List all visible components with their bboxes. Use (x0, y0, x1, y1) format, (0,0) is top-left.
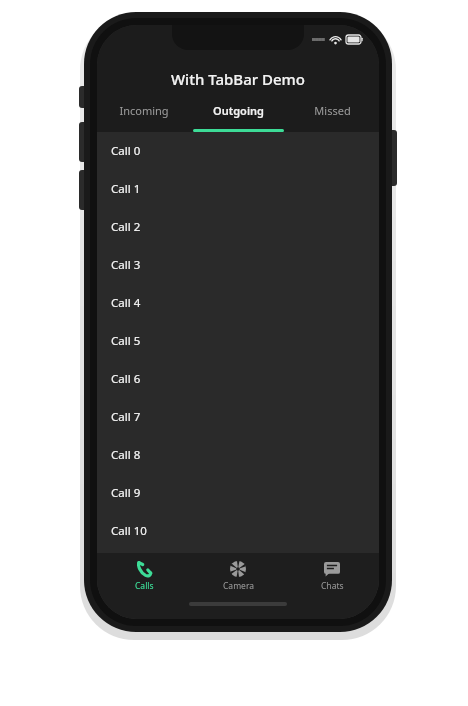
staticText: Chats (321, 580, 344, 592)
staticText: Outgoing (213, 103, 264, 118)
button[interactable]: Camera (191, 553, 285, 599)
button[interactable]: Incoming (97, 96, 191, 132)
staticText: Call 6 (111, 371, 141, 387)
staticText: Call 8 (111, 447, 141, 463)
button[interactable]: Call 10 (97, 512, 379, 550)
button[interactable]: Call 0 (97, 132, 379, 170)
button[interactable]: Call 11 (97, 550, 379, 588)
staticText: With TabBar Demo (171, 69, 305, 89)
button[interactable]: Call 3 (97, 246, 379, 284)
staticText: Call 10 (111, 523, 147, 539)
button[interactable]: Call 7 (97, 398, 379, 436)
staticText: Call 4 (111, 295, 141, 311)
button[interactable]: Call 1 (97, 170, 379, 208)
staticText: Incoming (119, 103, 169, 118)
staticText: Call 0 (111, 143, 141, 159)
button[interactable]: Call 4 (97, 284, 379, 322)
staticText: Call 7 (111, 409, 141, 425)
button[interactable]: Outgoing (191, 96, 285, 132)
staticText: Call 1 (111, 181, 141, 197)
button[interactable]: Call 12 (97, 588, 379, 619)
staticText: Call 3 (111, 257, 141, 273)
staticText: Call 5 (111, 333, 141, 349)
staticText: Camera (223, 580, 254, 592)
staticText: Call 9 (111, 485, 141, 501)
button[interactable]: Call 6 (97, 360, 379, 398)
button[interactable]: Call 5 (97, 322, 379, 360)
button[interactable]: Call 8 (97, 436, 379, 474)
staticText: Call 11 (111, 561, 147, 577)
button[interactable]: Missed (285, 96, 379, 132)
staticText: Call 2 (111, 219, 141, 235)
button[interactable]: Call 2 (97, 208, 379, 246)
button[interactable]: Calls (97, 553, 191, 599)
staticText: Missed (314, 103, 351, 118)
button[interactable]: Call 9 (97, 474, 379, 512)
staticText: Calls (135, 580, 154, 592)
button[interactable]: Chats (285, 553, 379, 599)
